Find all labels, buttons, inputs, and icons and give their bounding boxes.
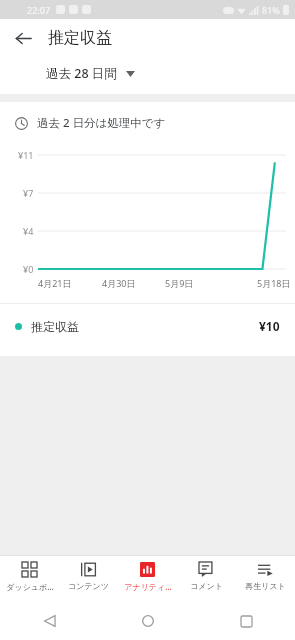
button[interactable]: Back <box>37 608 63 634</box>
button[interactable]: Home <box>135 608 161 634</box>
staticText: 4月30日 <box>102 277 136 289</box>
staticText: 再生リスト <box>245 581 286 591</box>
button[interactable]: 再生リスト <box>236 556 295 602</box>
button[interactable]: Back <box>6 21 40 55</box>
staticText: 5月18日 <box>257 277 291 289</box>
staticText: ¥0 <box>23 263 34 275</box>
staticText: 推定収益 <box>31 319 79 334</box>
button[interactable]: アナリティ… <box>118 556 177 602</box>
staticText: ¥4 <box>23 225 34 237</box>
staticText: 5月9日 <box>165 277 194 289</box>
staticText: コンテンツ <box>68 581 109 591</box>
staticText: 推定収益 <box>48 28 112 48</box>
staticText: ダッシュボ… <box>6 581 54 592</box>
staticText: 4月21日 <box>38 277 72 289</box>
staticText: ¥7 <box>23 187 34 199</box>
button[interactable]: ダッシュボ… <box>0 556 59 602</box>
staticText: コメント <box>190 581 223 591</box>
button[interactable]: Recents <box>233 608 259 634</box>
staticText: 過去 2 日分は処理中です <box>37 115 166 131</box>
button[interactable]: 推定収益 <box>0 304 295 338</box>
staticText: 22:07 <box>27 4 51 16</box>
staticText: アナリティ… <box>124 581 172 592</box>
button[interactable]: コンテンツ <box>59 556 118 602</box>
staticText: 81% <box>262 4 280 16</box>
staticText: 過去 28 日間 <box>46 65 117 82</box>
button[interactable]: コメント <box>177 556 236 602</box>
button[interactable]: 過去 28 日間 <box>40 57 141 90</box>
staticText: ¥11 <box>18 149 34 161</box>
staticText: ¥10 <box>259 318 280 334</box>
